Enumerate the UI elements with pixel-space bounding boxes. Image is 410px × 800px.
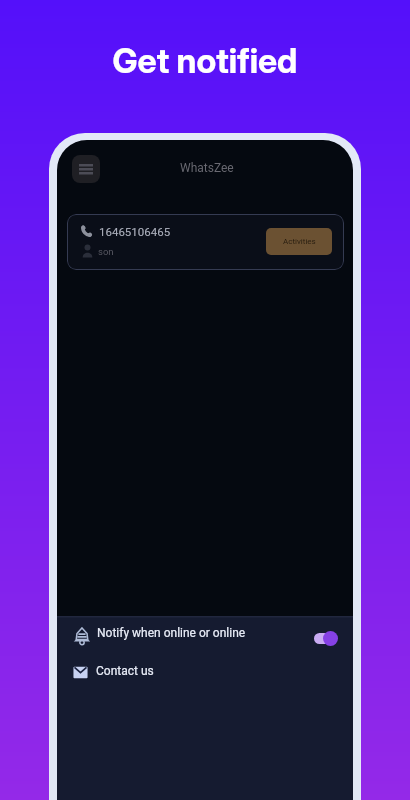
button[interactable]: Contact us [57, 656, 353, 686]
staticText: Get notified [0, 40, 410, 81]
staticText: WhatsZee [180, 161, 234, 175]
staticText: son [98, 246, 114, 257]
button[interactable]: Notify when online toggle [314, 630, 338, 646]
button[interactable]: Open navigation menu [72, 155, 100, 183]
button[interactable]: Notify when online or online [57, 616, 353, 650]
staticText: Contact us [96, 664, 154, 678]
staticText: 16465106465 [99, 225, 171, 238]
button[interactable]: Activities [266, 228, 332, 255]
staticText: Activities [283, 237, 316, 246]
button[interactable]: 16465106465 [67, 214, 344, 270]
staticText: Notify when online or online [97, 626, 246, 640]
